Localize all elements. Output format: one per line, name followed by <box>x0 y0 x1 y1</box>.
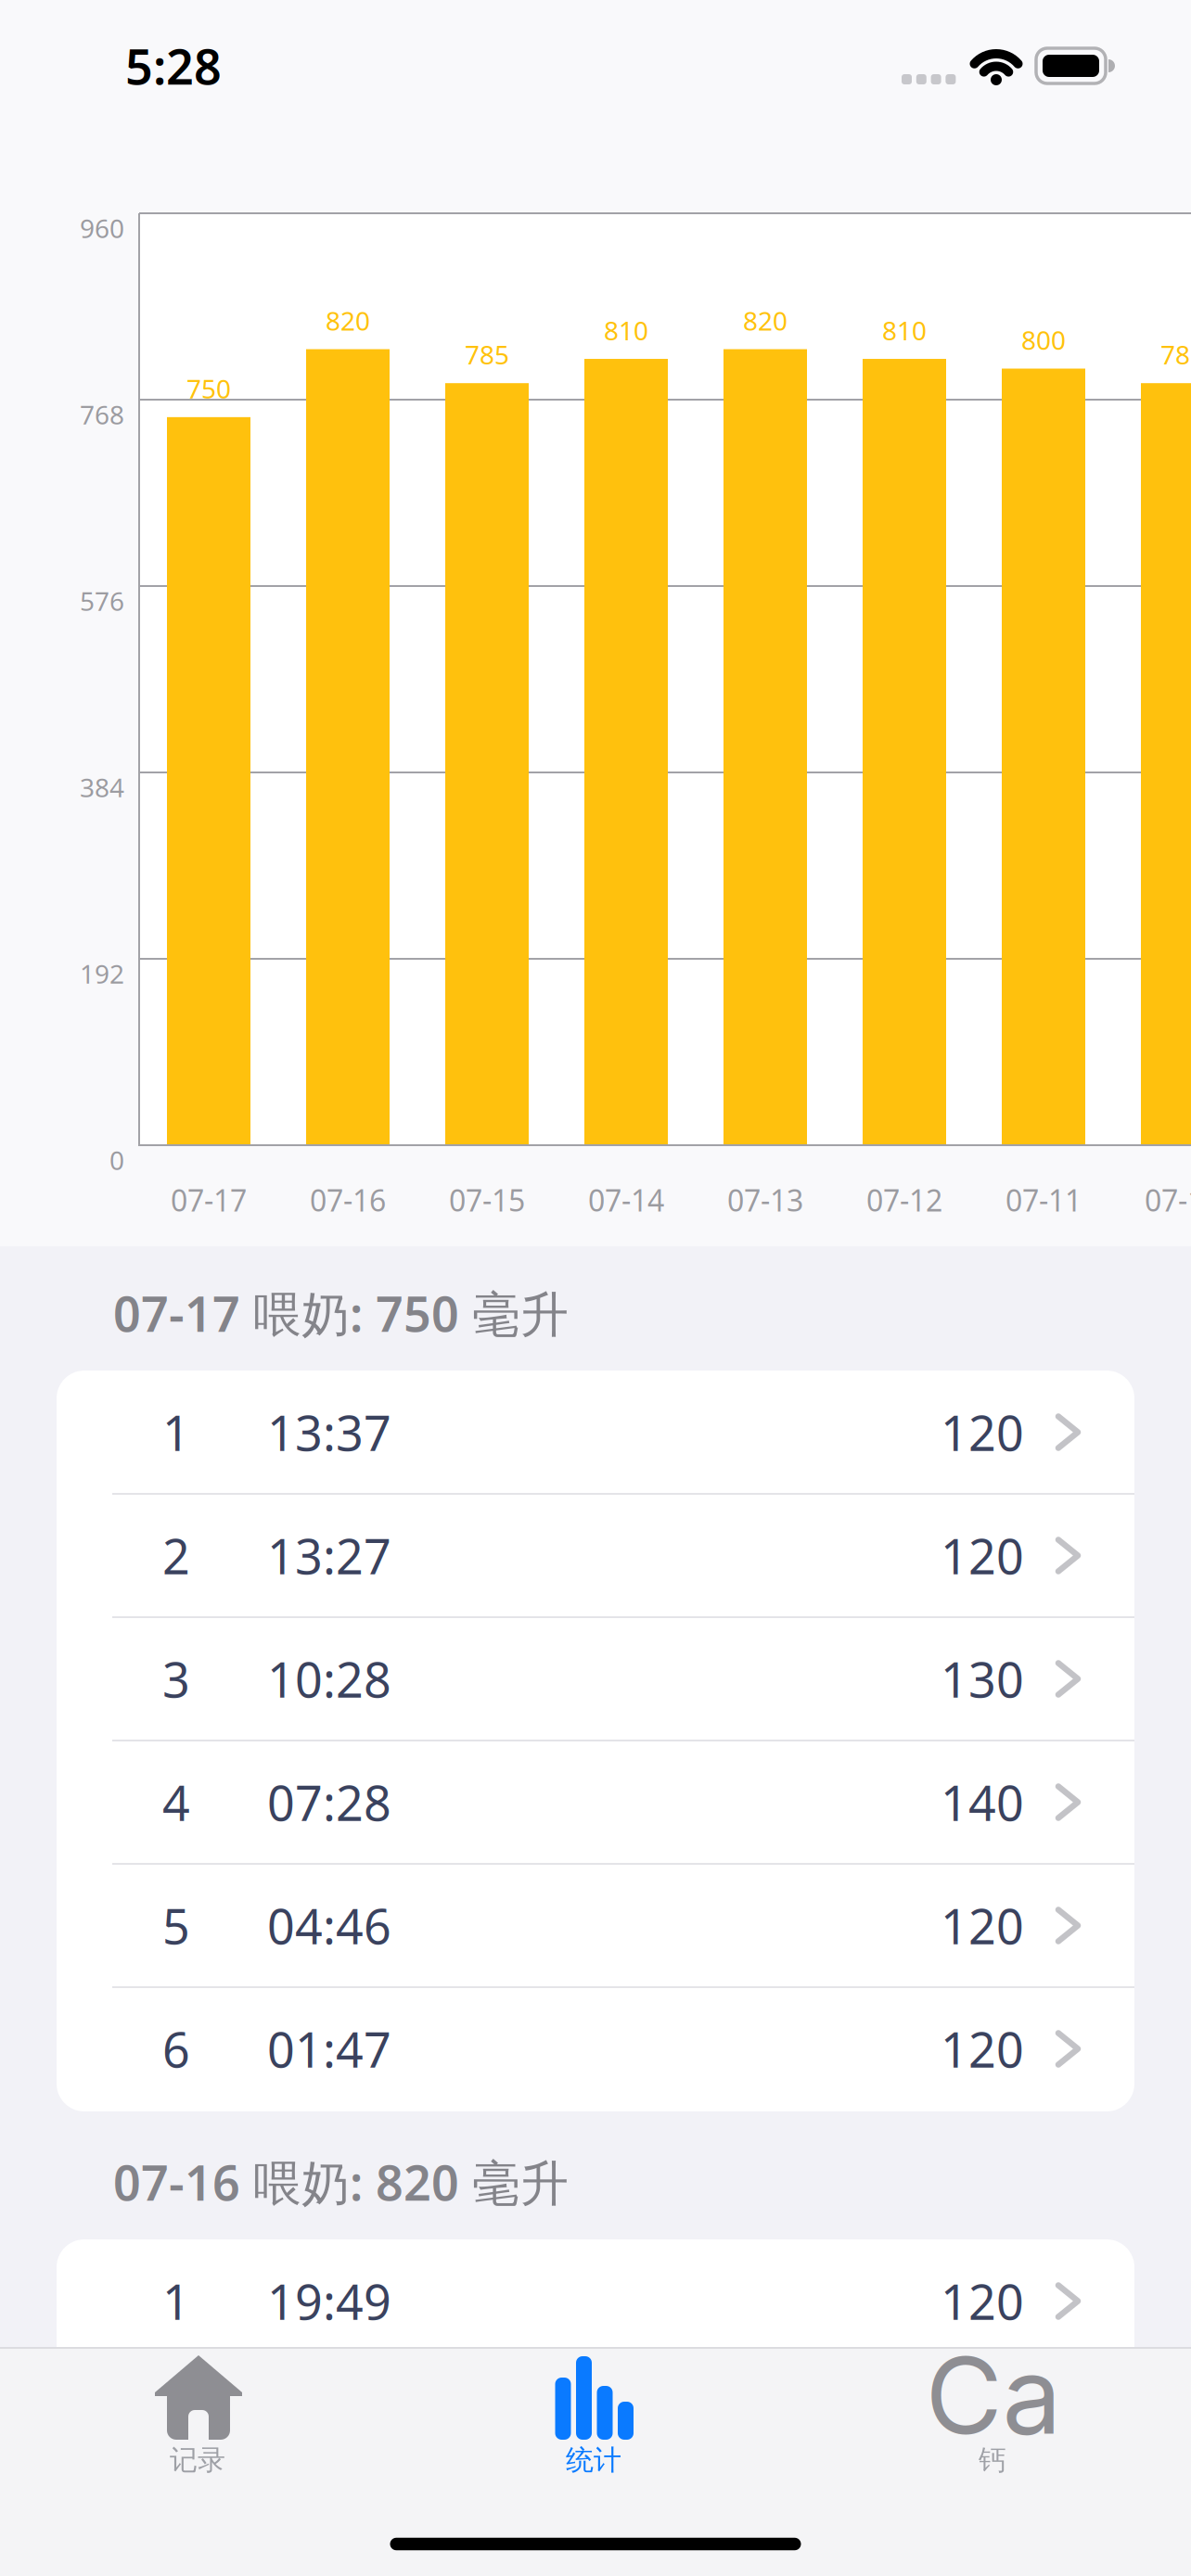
staticText: 785 <box>1160 337 1191 372</box>
staticText: 3 <box>162 1646 190 1712</box>
staticText: 785 <box>465 337 509 372</box>
staticText: 820 <box>326 303 370 338</box>
button[interactable]: 3 <box>57 1617 1134 1741</box>
staticText: 5:28 <box>125 33 222 99</box>
staticText: 07-13 <box>727 1180 803 1220</box>
staticText: 07-16 喂奶: 820 毫升 <box>113 2149 569 2215</box>
staticText: 810 <box>604 312 648 348</box>
staticText: 384 <box>80 770 124 805</box>
button[interactable]: 5 <box>57 1864 1134 1987</box>
button[interactable]: 1 <box>57 2239 1134 2363</box>
staticText: 统计 <box>566 2443 621 2478</box>
button[interactable]: 4 <box>57 1741 1134 1864</box>
staticText: 192 <box>80 956 124 991</box>
staticText: 120 <box>941 1399 1024 1465</box>
staticText: 120 <box>941 1523 1024 1588</box>
staticText: 800 <box>1021 322 1066 357</box>
staticText: 13:37 <box>267 1399 391 1465</box>
staticText: 4 <box>162 1769 190 1835</box>
staticText: 820 <box>743 303 788 338</box>
button[interactable]: 记录 <box>13 2348 384 2506</box>
staticText: 1 <box>162 2268 190 2334</box>
staticText: 576 <box>80 583 124 618</box>
staticText: 120 <box>941 2016 1024 2082</box>
staticText: 07-12 <box>866 1180 942 1220</box>
staticText: 04:46 <box>267 1893 391 1958</box>
staticText: 13:27 <box>267 1523 391 1588</box>
staticText: 01:47 <box>267 2016 391 2082</box>
staticText: 07-17 喂奶: 750 毫升 <box>113 1280 569 1346</box>
staticText: 07-10 <box>1145 1180 1191 1220</box>
button[interactable]: 6 <box>57 1987 1134 2111</box>
staticText: 960 <box>80 210 124 246</box>
staticText: 07-14 <box>588 1180 664 1220</box>
staticText: 19:49 <box>267 2268 391 2334</box>
staticText: 钙 <box>979 2443 1006 2478</box>
staticText: 810 <box>882 312 927 348</box>
staticText: Ca <box>925 2331 1062 2459</box>
staticText: 0 <box>109 1142 124 1178</box>
staticText: 10:28 <box>267 1646 391 1712</box>
staticText: 07:28 <box>267 1769 391 1835</box>
button[interactable]: 钙 <box>807 2348 1178 2506</box>
staticText: 140 <box>941 1769 1024 1835</box>
staticText: 1 <box>162 1399 190 1465</box>
staticText: 750 <box>186 371 231 406</box>
staticText: 768 <box>80 397 124 432</box>
staticText: 2 <box>162 1523 190 1588</box>
staticText: 07-15 <box>449 1180 525 1220</box>
button[interactable]: 统计 <box>410 2348 781 2506</box>
staticText: 记录 <box>170 2443 225 2478</box>
staticText: 6 <box>162 2016 190 2082</box>
staticText: 120 <box>941 2268 1024 2334</box>
staticText: 07-11 <box>1005 1180 1082 1220</box>
staticText: 120 <box>941 1893 1024 1958</box>
staticText: 07-17 <box>171 1180 247 1220</box>
button[interactable]: 2 <box>57 1494 1134 1617</box>
staticText: 130 <box>941 1646 1024 1712</box>
staticText: 5 <box>162 1893 190 1958</box>
staticText: 07-16 <box>310 1180 386 1220</box>
button[interactable]: 1 <box>57 1371 1134 1494</box>
